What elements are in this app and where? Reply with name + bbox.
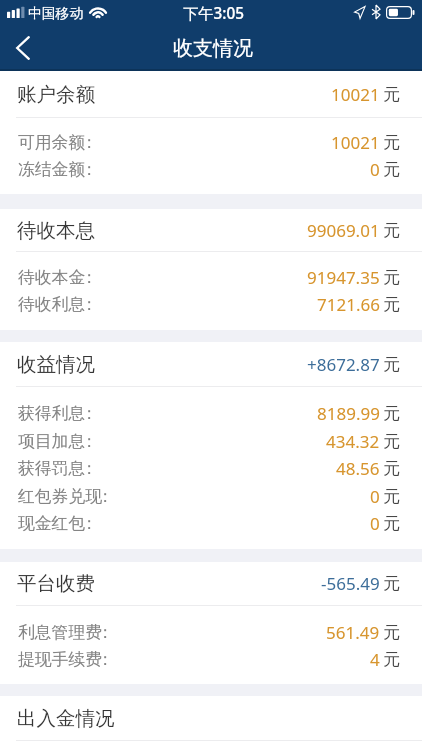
button[interactable]: 平台收费: [0, 562, 422, 605]
button[interactable]: 待收利息: [0, 291, 422, 318]
staticText: 提现手续费: [18, 649, 102, 670]
staticText: 元: [383, 486, 400, 507]
staticText: 收益情况: [17, 352, 95, 377]
staticText: 获得罚息: [18, 458, 86, 479]
button[interactable]: 获得罚息: [0, 455, 422, 482]
staticText: ：: [81, 458, 98, 479]
staticText: ：: [97, 486, 114, 507]
staticText: 元: [383, 513, 400, 534]
staticText: 91947.35: [307, 266, 380, 289]
staticText: -565.49: [321, 572, 380, 595]
staticText: 8189.99: [317, 402, 380, 425]
button[interactable]: 账户余额: [0, 71, 422, 117]
staticText: 0: [370, 158, 380, 181]
staticText: 利息管理费: [18, 622, 102, 643]
button[interactable]: 出入金情况: [0, 696, 422, 740]
staticText: 561.49: [326, 621, 380, 644]
button[interactable]: 冻结金额: [0, 156, 422, 183]
staticText: 0: [370, 512, 380, 535]
staticText: 收支情况: [173, 36, 253, 61]
button[interactable]: 获得利息: [0, 400, 422, 427]
staticText: 元: [383, 84, 400, 105]
staticText: 7121.66: [317, 293, 380, 316]
staticText: 现金红包: [18, 513, 86, 534]
staticText: +8672.87: [307, 353, 380, 376]
staticText: ：: [97, 622, 114, 643]
staticText: 平台收费: [17, 571, 95, 596]
staticText: ：: [81, 294, 98, 315]
staticText: 红包券兑现: [18, 486, 102, 507]
staticText: 0: [370, 485, 380, 508]
staticText: 待收本息: [17, 218, 95, 243]
staticText: 元: [383, 220, 400, 241]
staticText: ：: [81, 513, 98, 534]
staticText: ：: [81, 159, 98, 180]
staticText: 待收本金: [18, 267, 86, 288]
staticText: ：: [97, 649, 114, 670]
staticText: 中国移动: [28, 5, 84, 22]
button[interactable]: 返回: [0, 25, 46, 70]
staticText: 冻结金额: [18, 159, 86, 180]
staticText: ：: [81, 403, 98, 424]
staticText: 元: [383, 649, 400, 670]
staticText: 元: [383, 458, 400, 479]
button[interactable]: 提现手续费: [0, 646, 422, 673]
button[interactable]: 待收本息: [0, 209, 422, 251]
staticText: 元: [383, 294, 400, 315]
staticText: 元: [383, 159, 400, 180]
staticText: 10021: [331, 131, 380, 154]
staticText: 下午3:05: [183, 3, 245, 24]
staticText: ：: [81, 431, 98, 452]
staticText: 可用余额: [18, 132, 86, 153]
staticText: ：: [81, 267, 98, 288]
button[interactable]: 项目加息: [0, 427, 422, 455]
button[interactable]: 收益情况: [0, 342, 422, 386]
staticText: 元: [383, 622, 400, 643]
button[interactable]: 红包券兑现: [0, 482, 422, 510]
staticText: 434.32: [326, 430, 380, 453]
staticText: 账户余额: [17, 82, 95, 107]
staticText: 元: [383, 354, 400, 375]
staticText: 4: [370, 648, 380, 671]
staticText: 元: [383, 573, 400, 594]
staticText: 元: [383, 132, 400, 153]
staticText: 获得利息: [18, 403, 86, 424]
button[interactable]: 现金红包: [0, 510, 422, 537]
staticText: ：: [81, 132, 98, 153]
staticText: 99069.01: [307, 219, 380, 242]
staticText: 出入金情况: [17, 706, 115, 731]
staticText: 48.56: [336, 457, 380, 480]
staticText: 10021: [331, 83, 380, 106]
staticText: 元: [383, 267, 400, 288]
button[interactable]: 利息管理费: [0, 618, 422, 646]
staticText: 元: [383, 431, 400, 452]
staticText: 元: [383, 403, 400, 424]
staticText: 待收利息: [18, 294, 86, 315]
button[interactable]: 待收本金: [0, 264, 422, 291]
staticText: 项目加息: [18, 431, 86, 452]
button[interactable]: 可用余额: [0, 129, 422, 156]
